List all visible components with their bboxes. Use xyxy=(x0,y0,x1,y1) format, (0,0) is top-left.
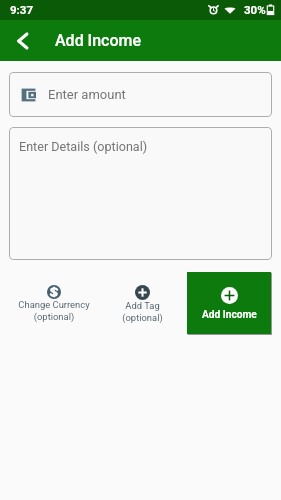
staticText: 9:37 xyxy=(10,3,34,16)
button[interactable]: Add Tag (optional) xyxy=(98,272,187,323)
staticText: Change Currency (optional) xyxy=(18,299,90,322)
staticText: Add Tag (optional) xyxy=(122,300,163,323)
button[interactable]: Change Currency (optional) xyxy=(9,272,98,322)
staticText: Enter amount xyxy=(48,87,126,102)
staticText: Add Income xyxy=(202,309,257,321)
staticText: Enter Details (optional) xyxy=(19,139,148,154)
button[interactable]: Back xyxy=(0,20,46,61)
staticText: Add Income xyxy=(55,31,141,50)
button[interactable]: Enter Details (optional) xyxy=(9,127,272,260)
staticText: 30% xyxy=(244,3,266,16)
button[interactable]: Add Income xyxy=(187,272,272,335)
button[interactable]: Enter amount xyxy=(9,72,272,117)
